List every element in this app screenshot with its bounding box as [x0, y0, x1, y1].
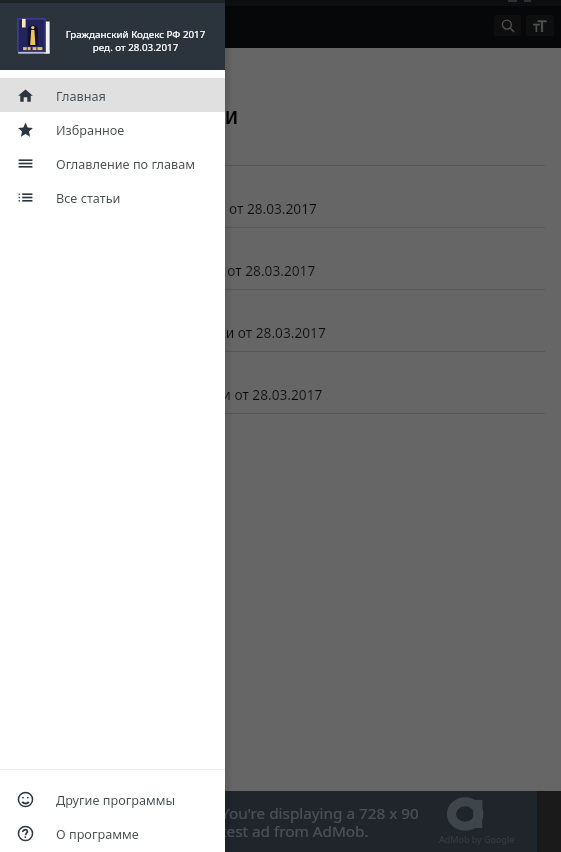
- button[interactable]: Гражданский кодекс РФ: [0, 228, 561, 289]
- staticText: (часть вторая) в редакции 2017 от 28.03.…: [16, 261, 316, 280]
- button[interactable]: Гражданский кодекс РФ: [0, 290, 561, 351]
- button[interactable]: Избранное: [0, 112, 225, 146]
- button[interactable]: Гражданский кодекс РФ: [0, 166, 561, 227]
- staticText: Избранное: [56, 121, 125, 138]
- staticText: (часть четвёртая) в редакции ии от 28.03…: [16, 385, 323, 404]
- staticText: (часть третья) в редакции 201 ии от 28.0…: [16, 323, 326, 342]
- button[interactable]: Гражданский кодекс РФ: [0, 352, 561, 413]
- staticText: Все статьи: [56, 189, 121, 206]
- button[interactable]: Другие программы: [0, 782, 225, 816]
- button[interactable]: Главная: [0, 78, 225, 112]
- staticText: (часть первая) в редакции 2017 от 28.03.…: [16, 199, 317, 218]
- staticText: Другие программы: [56, 791, 176, 808]
- button[interactable]: Search: [494, 15, 521, 36]
- button[interactable]: Оглавление по главам: [0, 146, 225, 180]
- button[interactable]: Все статьи: [0, 180, 225, 214]
- staticText: ГРАЖДАНСКИЙ КОДЕКС РФ ЧАСТИ: [0, 106, 239, 129]
- button[interactable]: You're displaying a 728 x 90 test ad fro…: [0, 791, 561, 852]
- button[interactable]: Text size: [526, 15, 554, 36]
- staticText: You're displaying a 728 x 90 test ad fro…: [221, 803, 419, 842]
- staticText: О программе: [56, 825, 139, 842]
- staticText: Главная: [56, 87, 106, 104]
- staticText: AdMob by Google: [439, 833, 515, 845]
- staticText: Оглавление по главам: [56, 155, 196, 172]
- staticText: Гражданский кодекс РФ: [16, 180, 175, 199]
- staticText: Гражданский Кодекс РФ 2017 ред. от 28.03…: [56, 28, 215, 54]
- button[interactable]: О программе: [0, 816, 225, 850]
